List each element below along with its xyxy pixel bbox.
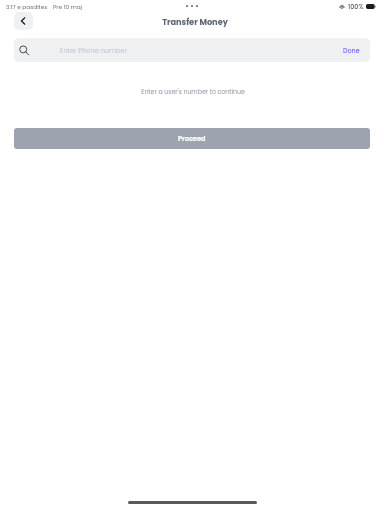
staticText: Enter a user's number to continue [1,87,384,96]
staticText: Done [343,46,360,55]
button[interactable]: Enter Phone number [14,38,370,62]
staticText: Transfer Money [3,16,384,27]
staticText: Enter Phone number [60,46,127,55]
staticText: 100% [348,2,364,11]
staticText: 3:17 e pasdites [6,3,48,11]
button[interactable]: Done [333,38,370,62]
staticText: Pre 10 maj [53,3,83,11]
button[interactable]: Proceed [14,128,370,149]
staticText: Proceed [178,134,206,143]
button[interactable]: Back [14,12,33,30]
